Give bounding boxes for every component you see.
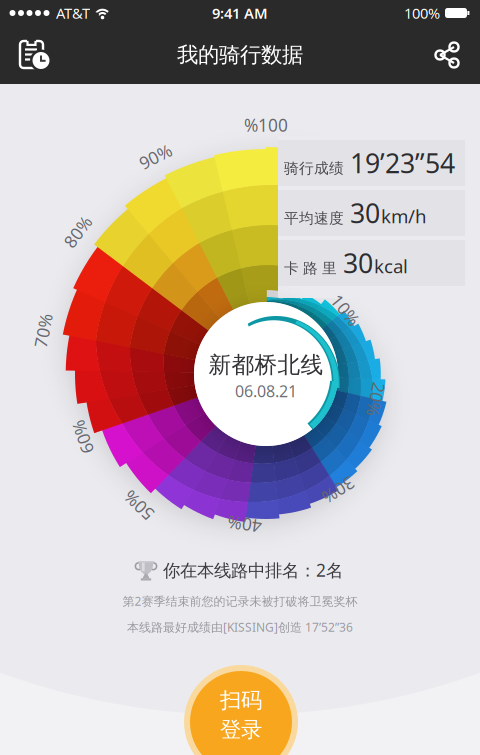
staticText: 第2赛季结束前您的记录未被打破将卫冕奖杯 <box>122 593 357 609</box>
staticText: 90% <box>138 145 172 168</box>
staticText: 30 <box>343 245 373 281</box>
button[interactable]: 扫码 <box>184 665 298 755</box>
staticText: 骑行成绩 <box>284 159 344 177</box>
staticText: 20% <box>359 388 393 411</box>
staticText: 60% <box>66 426 100 449</box>
staticText: 扫码 <box>220 687 262 713</box>
staticText: 10% <box>328 298 362 321</box>
staticText: 卡 路 里 <box>284 259 337 277</box>
staticText: 30 <box>350 195 380 231</box>
staticText: 本线路最好成绩由[KISSING]创造 17’52”36 <box>127 619 353 635</box>
staticText: 40% <box>228 513 262 536</box>
staticText: kcal <box>374 254 408 278</box>
staticText: km/h <box>381 204 427 228</box>
staticText: AT&T <box>56 3 90 23</box>
staticText: 登录 <box>220 716 262 743</box>
staticText: 平均速度 <box>284 209 344 227</box>
staticText: 19’23”54 <box>350 145 455 181</box>
staticText: 30% <box>322 479 356 502</box>
staticText: 9:41 AM <box>212 3 268 23</box>
staticText: 你在本线路中排名：2名 <box>163 558 343 581</box>
staticText: 100% <box>404 3 440 23</box>
button[interactable]: Share <box>425 33 469 77</box>
button[interactable]: History <box>10 31 58 79</box>
staticText: 新都桥北线 <box>208 351 323 379</box>
staticText: %100 <box>244 113 288 136</box>
staticText: 06.08.21 <box>235 380 297 402</box>
staticText: 70% <box>26 319 60 342</box>
staticText: 80% <box>60 220 94 243</box>
staticText: 我的骑行数据 <box>177 42 303 68</box>
staticText: 50% <box>122 494 156 517</box>
